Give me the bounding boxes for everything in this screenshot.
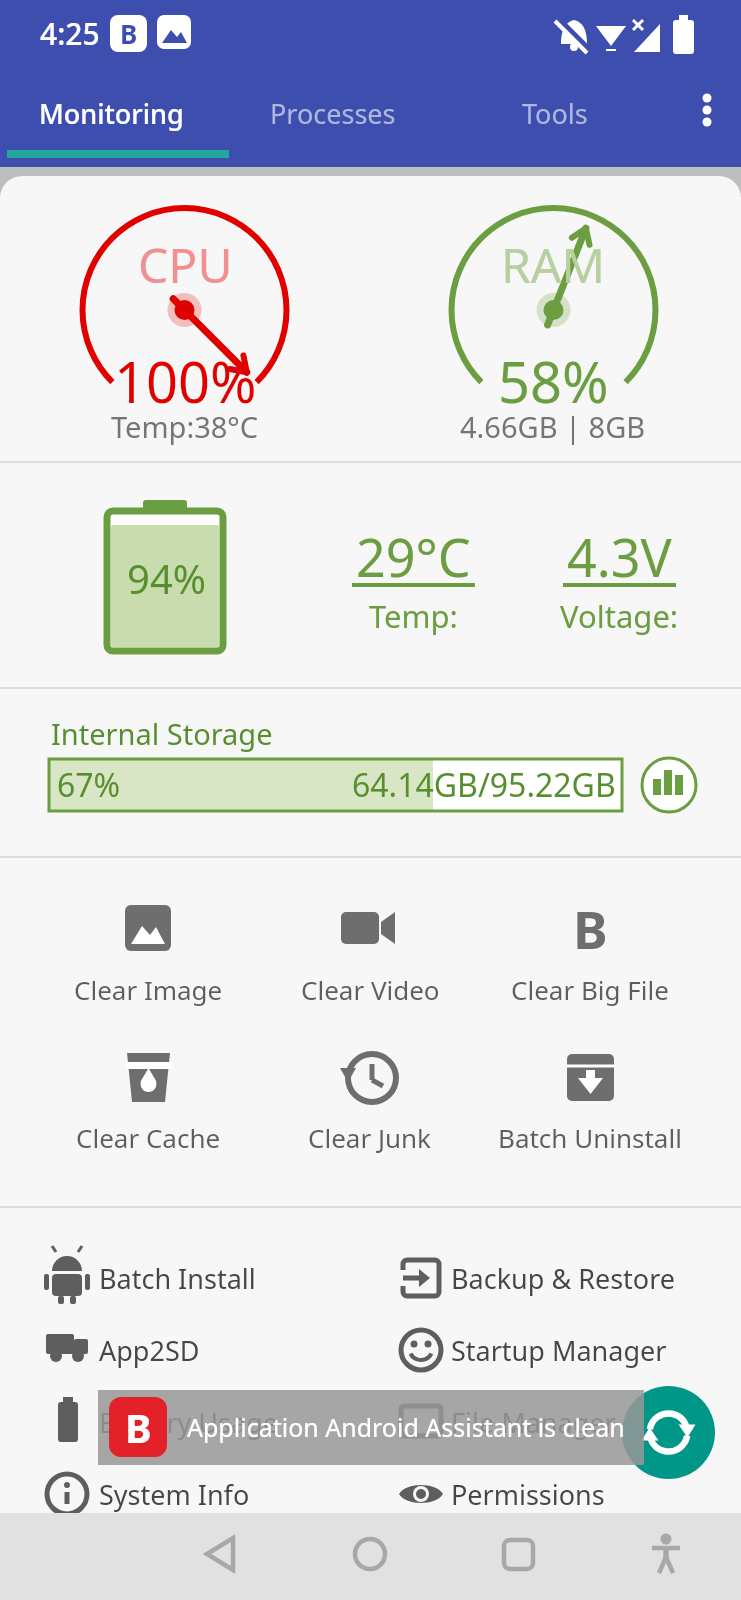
staticText: Clear Image (74, 972, 223, 1007)
button[interactable] (385, 1460, 715, 1513)
staticText: Batch Uninstall (498, 1120, 682, 1155)
staticText: 64.14GB/95.22GB (352, 763, 616, 807)
staticText: 58% (498, 343, 609, 419)
staticText: App2SD (99, 1332, 200, 1369)
staticText: B (125, 1400, 152, 1454)
button[interactable]: Monitoring (0, 66, 222, 160)
button[interactable] (43, 866, 253, 1016)
button[interactable] (596, 1513, 736, 1600)
staticText: Clear Junk (308, 1120, 432, 1155)
staticText: 4.3V (567, 521, 672, 592)
staticText: 94% (127, 551, 206, 605)
staticText: File Manager (451, 1404, 616, 1441)
button[interactable] (300, 1513, 440, 1600)
staticText: Permissions (451, 1476, 605, 1513)
staticText: Startup Manager (451, 1332, 667, 1369)
staticText: RAM (501, 232, 606, 297)
staticText: Backup & Restore (451, 1260, 676, 1297)
button[interactable] (265, 1016, 475, 1166)
button[interactable] (30, 1460, 360, 1513)
staticText: 29°C (356, 521, 471, 592)
button[interactable] (485, 866, 695, 1016)
button[interactable] (485, 1016, 695, 1166)
staticText: CPU (138, 232, 233, 297)
staticText: Processes (270, 95, 396, 132)
staticText: B (120, 16, 138, 51)
button[interactable]: Processes (222, 66, 444, 160)
button[interactable] (385, 1316, 715, 1384)
button[interactable] (385, 1388, 715, 1456)
staticText: Application Android Assistant is clean (187, 1410, 625, 1444)
staticText: Monitoring (39, 95, 184, 132)
staticText: Clear Video (301, 972, 440, 1007)
button[interactable]: Tools (444, 66, 666, 160)
staticText: Internal Storage (51, 714, 273, 753)
staticText: System Info (99, 1476, 250, 1513)
staticText: 4:25 (40, 13, 100, 54)
button[interactable] (448, 1513, 588, 1600)
staticText: Battery Usage (99, 1404, 279, 1441)
staticText: B (573, 893, 608, 964)
button[interactable] (622, 1386, 715, 1479)
button[interactable] (676, 76, 736, 150)
button[interactable] (629, 745, 709, 825)
button[interactable] (385, 1244, 715, 1312)
staticText: Clear Big File (511, 972, 669, 1007)
staticText: Tools (522, 95, 588, 132)
staticText: Clear Cache (76, 1120, 221, 1155)
button[interactable] (160, 1513, 300, 1600)
button[interactable] (265, 866, 475, 1016)
staticText: Temp:38°C (111, 407, 259, 446)
staticText: Batch Install (99, 1260, 256, 1297)
button[interactable] (30, 1316, 360, 1384)
button[interactable] (43, 1016, 253, 1166)
staticText: 4.66GB | 8GB (460, 407, 646, 446)
button[interactable] (30, 1244, 360, 1312)
staticText: 100% (114, 343, 257, 419)
staticText: Temp: (369, 595, 458, 637)
button[interactable] (30, 1388, 360, 1456)
staticText: 67% (57, 763, 121, 807)
staticText: Voltage: (560, 595, 679, 637)
